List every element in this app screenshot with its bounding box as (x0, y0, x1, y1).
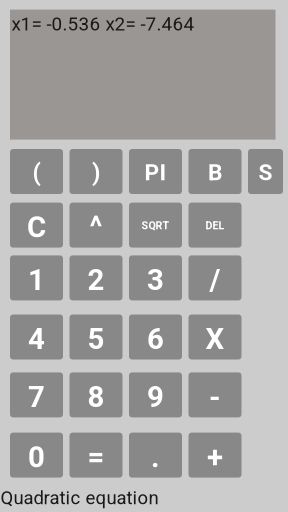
button[interactable]: ) (69, 149, 122, 194)
staticText: x1= -0.536 x2= -7.464 (11, 13, 194, 35)
staticText: 2 (87, 263, 104, 297)
button[interactable]: 1 (10, 255, 63, 300)
staticText: Quadratic equation (0, 487, 158, 509)
staticText: / (209, 263, 220, 297)
staticText: 3 (147, 263, 164, 297)
button[interactable]: 4 (10, 314, 63, 359)
staticText: DEL (205, 219, 224, 232)
button[interactable]: / (188, 255, 241, 300)
staticText: = (87, 440, 104, 474)
staticText: - (209, 380, 221, 414)
staticText: 9 (147, 380, 164, 414)
button[interactable]: 9 (129, 372, 182, 417)
button[interactable]: . (129, 433, 182, 478)
staticText: ) (92, 158, 100, 186)
button[interactable]: PI (129, 149, 182, 194)
button[interactable]: B (188, 149, 241, 194)
staticText: ( (32, 158, 40, 186)
button[interactable]: X (188, 314, 241, 359)
staticText: S (258, 159, 272, 186)
staticText: 4 (28, 322, 45, 356)
staticText: 7 (28, 380, 45, 414)
button[interactable]: + (188, 433, 241, 478)
button[interactable]: SQRT (129, 203, 182, 248)
button[interactable]: = (69, 433, 122, 478)
button[interactable]: 3 (129, 255, 182, 300)
button[interactable]: C (10, 203, 63, 248)
staticText: PI (144, 159, 166, 186)
button[interactable]: 7 (10, 372, 63, 417)
staticText: ^ (89, 210, 102, 244)
button[interactable]: 6 (129, 314, 182, 359)
button[interactable]: 5 (69, 314, 122, 359)
staticText: 8 (87, 380, 104, 414)
staticText: . (151, 440, 160, 474)
button[interactable]: ( (10, 149, 63, 194)
button[interactable]: 8 (69, 372, 122, 417)
staticText: SQRT (141, 219, 169, 232)
staticText: 0 (28, 440, 45, 474)
button[interactable]: 2 (69, 255, 122, 300)
staticText: 6 (147, 322, 164, 356)
button[interactable]: DEL (188, 203, 241, 248)
staticText: B (208, 159, 222, 186)
staticText: 1 (28, 263, 45, 297)
staticText: 5 (87, 322, 104, 356)
button[interactable]: 0 (10, 433, 63, 478)
staticText: + (207, 440, 223, 474)
button[interactable]: ^ (69, 203, 122, 248)
button[interactable]: - (188, 372, 241, 417)
staticText: C (27, 210, 46, 244)
staticText: X (205, 322, 224, 356)
button[interactable]: S (248, 149, 283, 194)
